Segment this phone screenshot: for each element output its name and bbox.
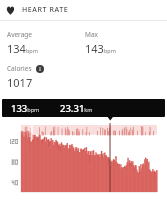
button[interactable]: 133bpm	[2, 99, 165, 117]
other: Heart rate	[6, 6, 15, 15]
staticText: 134bpm	[7, 41, 38, 56]
button[interactable]: Heart rate	[0, 0, 167, 20]
staticText: HEART RATE	[22, 5, 69, 15]
staticText: Average	[7, 30, 32, 39]
button[interactable]: Calories information	[36, 65, 44, 73]
staticText: 23.31km	[60, 102, 93, 115]
staticText: 133bpm	[11, 102, 40, 115]
button[interactable]	[0, 123, 167, 196]
staticText: Max	[85, 30, 98, 39]
staticText: 1017	[7, 75, 33, 90]
staticText: Calories	[7, 64, 32, 73]
staticText: 143bpm	[85, 41, 116, 56]
